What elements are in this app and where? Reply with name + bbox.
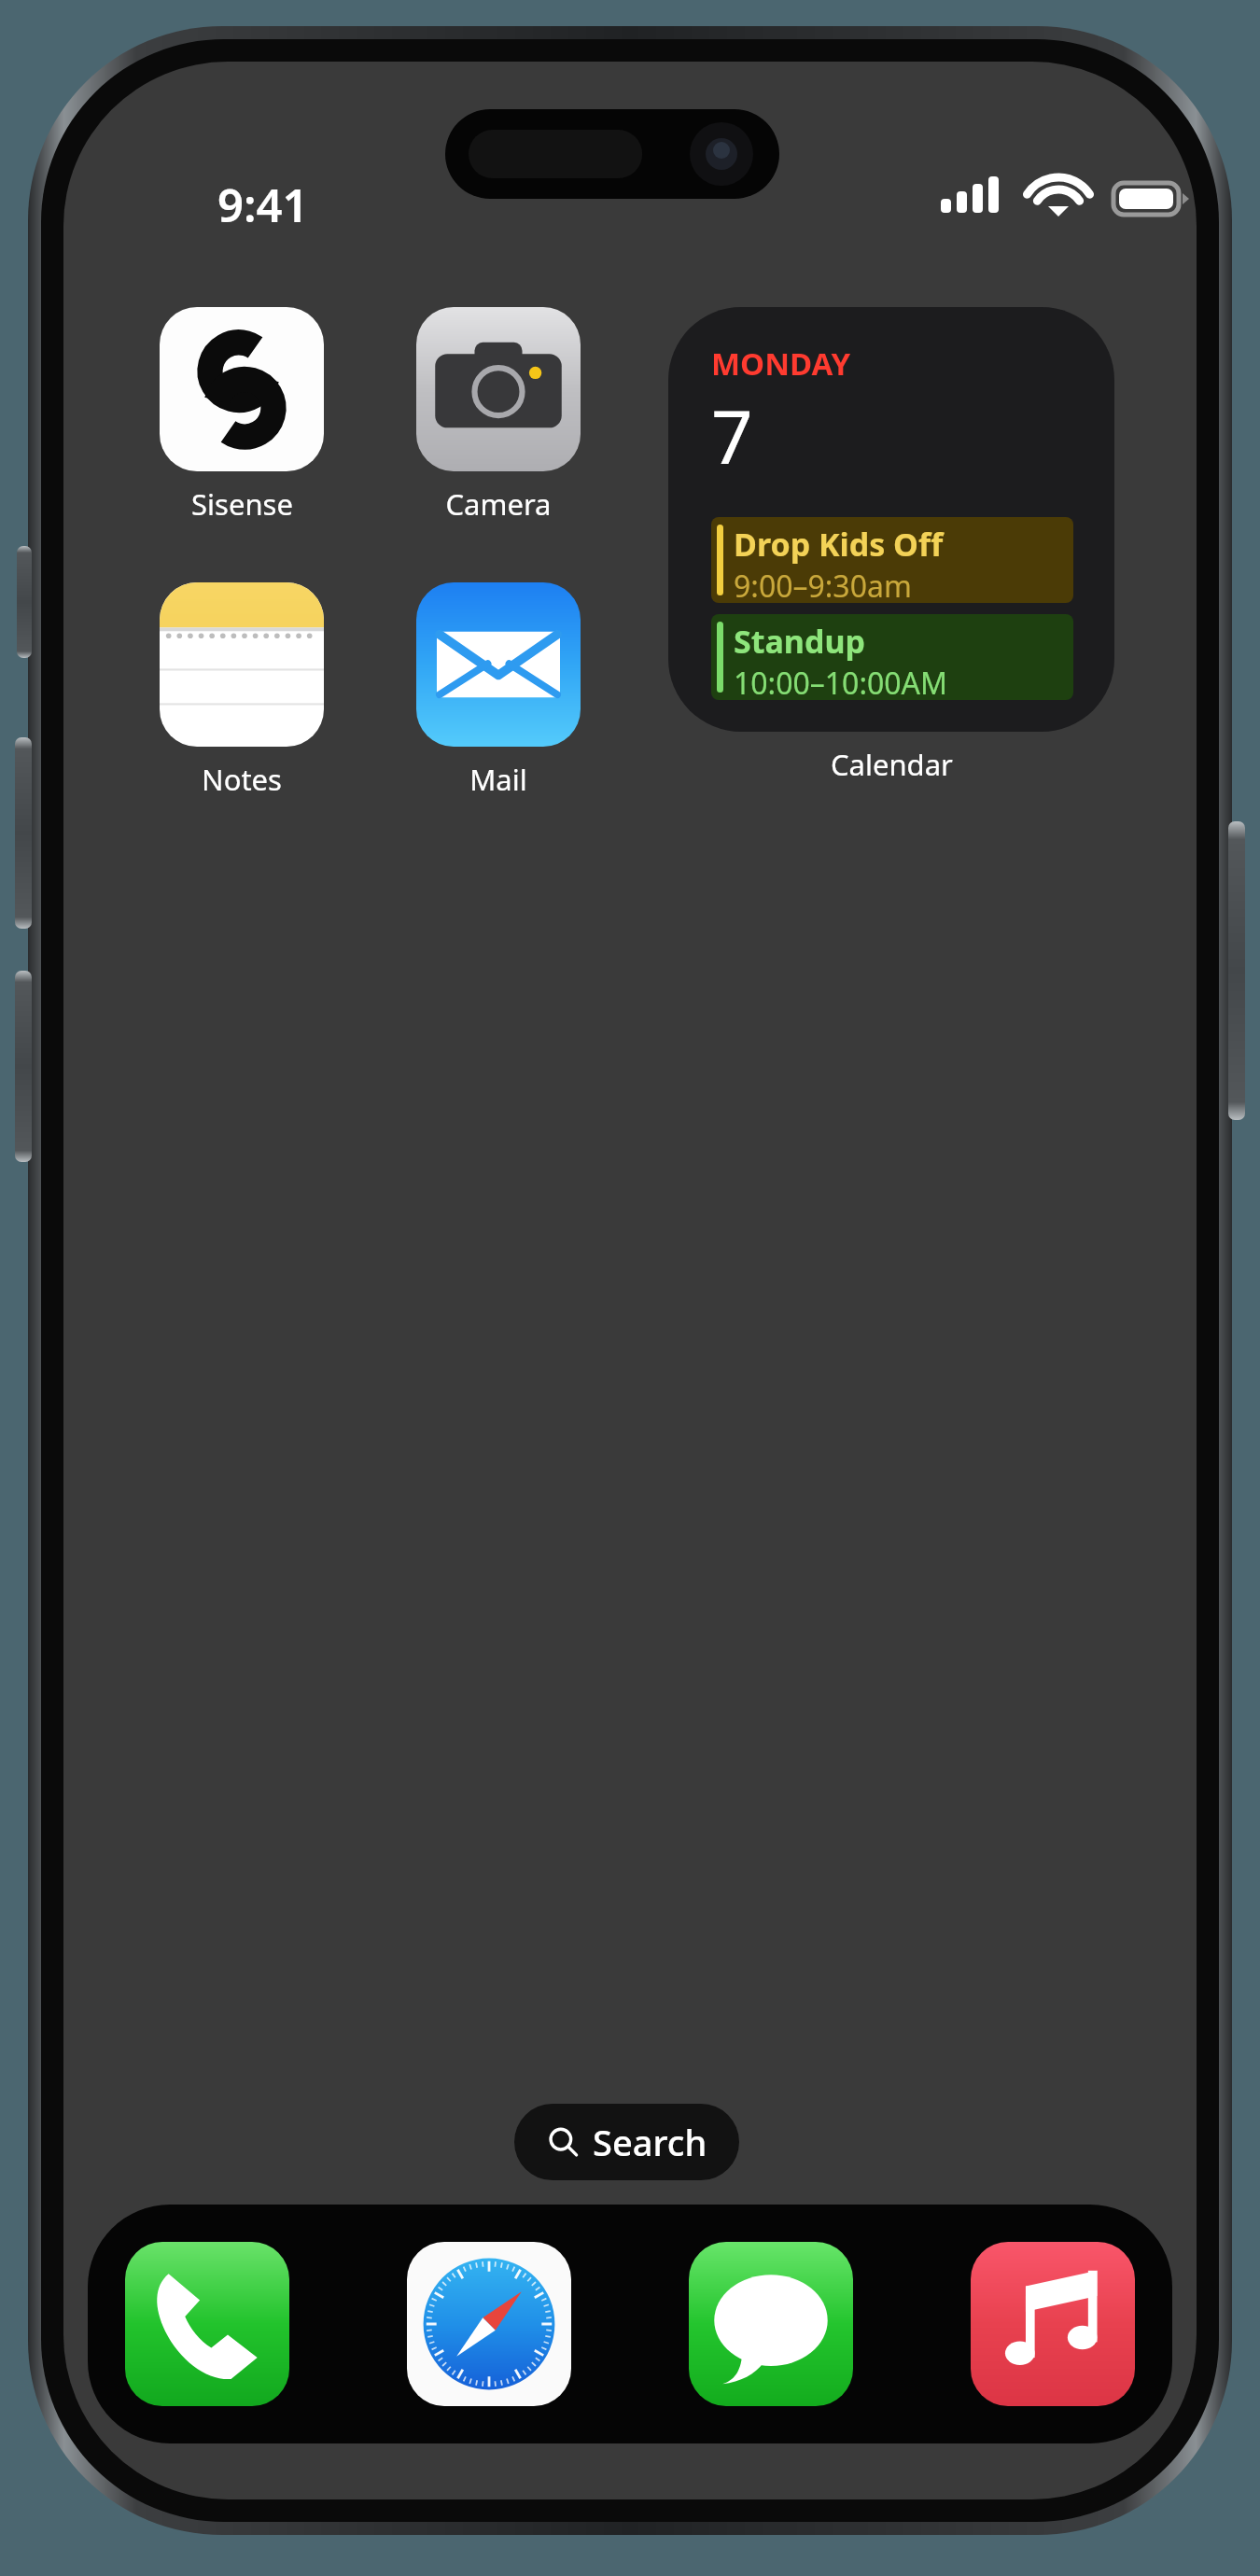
button[interactable]: Messages bbox=[689, 2242, 853, 2406]
button[interactable]: Mail bbox=[416, 582, 581, 799]
staticText: 7 bbox=[711, 386, 753, 485]
button[interactable]: Sisense bbox=[160, 307, 324, 524]
staticText: 10:00–10:00AM bbox=[734, 663, 948, 700]
button[interactable]: Notes bbox=[160, 582, 324, 799]
button[interactable]: Drop Kids Off bbox=[711, 517, 1073, 603]
staticText: Camera bbox=[445, 484, 552, 524]
button[interactable]: Music bbox=[971, 2242, 1135, 2406]
button[interactable]: Phone bbox=[125, 2242, 289, 2406]
staticText: Sisense bbox=[191, 484, 293, 524]
staticText: Notes bbox=[202, 760, 282, 799]
staticText: Drop Kids Off bbox=[734, 523, 944, 566]
staticText: Standup bbox=[734, 620, 866, 663]
button[interactable]: MONDAY bbox=[668, 307, 1114, 732]
staticText: MONDAY bbox=[711, 343, 851, 385]
button[interactable]: Search bbox=[514, 2104, 739, 2180]
staticText: Search bbox=[593, 2118, 707, 2166]
staticText: 9:00–9:30am bbox=[734, 566, 912, 603]
staticText: Mail bbox=[469, 760, 527, 799]
button[interactable]: Camera bbox=[416, 307, 581, 524]
button[interactable]: Safari bbox=[407, 2242, 571, 2406]
button[interactable]: Standup bbox=[711, 614, 1073, 700]
staticText: Calendar bbox=[831, 745, 953, 784]
staticText: 9:41 bbox=[217, 174, 309, 236]
